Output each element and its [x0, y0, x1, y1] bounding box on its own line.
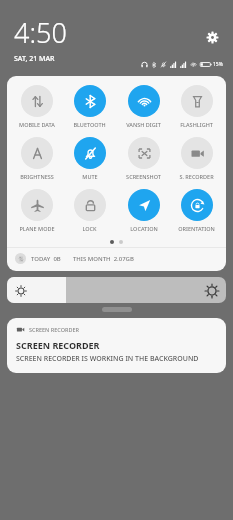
button[interactable]: FLASHLIGHT	[170, 83, 223, 130]
staticText: SCREEN RECORDER	[29, 326, 80, 333]
staticText: MOBILE DATA	[19, 121, 55, 128]
staticText: S. RECORDER	[179, 173, 214, 180]
staticText: SCREENSHOT	[126, 173, 161, 180]
staticText: BRIGHTNESS	[20, 173, 54, 180]
button[interactable]: MOBILE DATA	[10, 83, 63, 130]
button[interactable]: PLANE MODE	[10, 187, 63, 234]
button[interactable]: LOCATION	[117, 187, 170, 234]
staticText: MUTE	[82, 173, 98, 180]
staticText: VANSH DIGIT	[126, 121, 161, 128]
staticText: THIS MONTH 2.07GB	[73, 255, 134, 263]
button[interactable]: LOCK	[63, 187, 116, 234]
staticText: BLUETOOTH	[73, 121, 106, 128]
staticText: FLASHLIGHT	[180, 121, 213, 128]
staticText: 4:50	[14, 14, 67, 51]
button[interactable]: BLUETOOTH	[63, 83, 116, 130]
button[interactable]: MUTE	[63, 135, 116, 182]
staticText: 15%	[213, 61, 223, 68]
staticText: LOCK	[82, 225, 97, 232]
button[interactable]: Settings	[201, 26, 223, 48]
staticText: PLANE MODE	[19, 225, 55, 232]
button[interactable]: SCREENSHOT	[117, 135, 170, 182]
staticText: SCREEN RECORDER IS WORKING IN THE BACKGR…	[16, 354, 199, 364]
button[interactable]: S. RECORDER	[170, 135, 223, 182]
button[interactable]: BRIGHTNESS	[10, 135, 63, 182]
staticText: LOCATION	[130, 225, 158, 232]
staticText: SAT, 21 MAR	[14, 54, 55, 64]
button[interactable]: VANSH DIGIT	[117, 83, 170, 130]
button[interactable]: ORIENTATION	[170, 187, 223, 234]
button[interactable]: SCREEN RECORDER	[7, 318, 226, 373]
staticText: TODAY 0B	[31, 255, 61, 263]
button[interactable]: Brightness slider	[7, 277, 226, 303]
staticText: ORIENTATION	[178, 225, 215, 232]
staticText: SCREEN RECORDER	[16, 339, 100, 351]
